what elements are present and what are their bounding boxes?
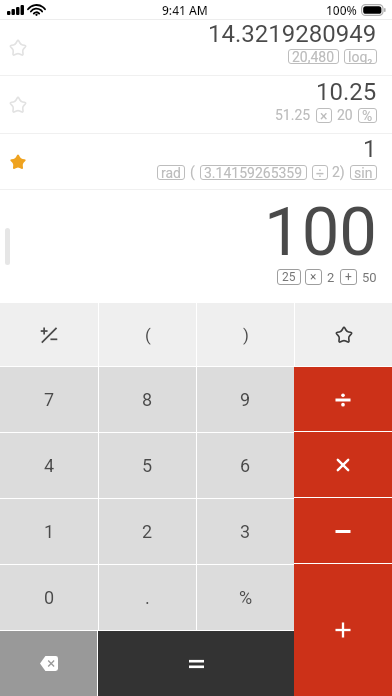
staticText: 3 (240, 521, 251, 542)
button[interactable]: Divide (294, 367, 392, 431)
staticText: 2 (327, 270, 335, 285)
button[interactable]: 8 (99, 367, 196, 432)
button[interactable]: 5 (99, 433, 196, 498)
staticText: 2) (332, 164, 345, 180)
button[interactable]: Plus (294, 564, 392, 696)
staticText: 100% (326, 2, 357, 18)
button[interactable]: 0 (0, 565, 98, 630)
button[interactable]: % (197, 565, 294, 630)
button[interactable]: 1 (0, 499, 98, 564)
button[interactable]: Favorite (295, 303, 392, 366)
staticText: 50 (362, 270, 377, 285)
staticText: % (239, 587, 253, 608)
button[interactable]: 9 (197, 367, 294, 432)
other: Favorite (9, 96, 27, 114)
staticText: log₂ (348, 49, 373, 64)
button[interactable]: Multiply (294, 432, 392, 497)
staticText: 6 (240, 455, 251, 476)
staticText: 3.14159265359 (204, 165, 303, 180)
staticText: rad (161, 165, 181, 180)
staticText: 10.25 (316, 78, 377, 106)
staticText: 9 (240, 389, 251, 410)
button[interactable]: 2 (99, 499, 196, 564)
other: Favorite (9, 39, 27, 57)
button[interactable]: Backspace (0, 631, 97, 696)
button[interactable]: Favorite (0, 76, 392, 134)
staticText: × (320, 108, 328, 123)
staticText: ( (145, 325, 151, 345)
staticText: × (310, 270, 317, 284)
staticText: 20 (337, 107, 353, 123)
staticText: . (145, 587, 150, 608)
button[interactable]: Minus (294, 498, 392, 563)
button[interactable]: Plus minus (0, 303, 98, 366)
staticText: + (345, 270, 352, 284)
staticText: ) (243, 325, 249, 345)
button[interactable]: Favorite (0, 20, 392, 76)
button[interactable]: ) (197, 303, 294, 366)
staticText: ÷ (316, 165, 324, 180)
staticText: sin (354, 165, 373, 180)
button[interactable]: ( (99, 303, 196, 366)
other: Unfavorite (9, 153, 27, 171)
button[interactable]: 4 (0, 433, 98, 498)
staticText: 20,480 (292, 49, 335, 64)
staticText: 0 (44, 587, 55, 608)
staticText: 1 (44, 521, 55, 542)
button[interactable]: 3 (197, 499, 294, 564)
staticText: 2 (142, 521, 153, 542)
staticText: 25 (282, 270, 296, 284)
staticText: % (362, 108, 373, 123)
staticText: 4 (44, 455, 55, 476)
staticText: 8 (142, 389, 153, 410)
staticText: 7 (44, 389, 55, 410)
staticText: ( (190, 164, 195, 180)
staticText: 5 (142, 455, 153, 476)
button[interactable]: 7 (0, 367, 98, 432)
button[interactable]: 6 (197, 433, 294, 498)
staticText: 1 (363, 135, 377, 163)
staticText: 51.25 (275, 107, 311, 123)
staticText: 9:41 AM (162, 2, 208, 18)
staticText: 100 (264, 193, 377, 272)
button[interactable]: Unfavorite (0, 134, 392, 190)
button[interactable] (98, 631, 294, 696)
staticText: 14.3219280949 (208, 20, 377, 48)
